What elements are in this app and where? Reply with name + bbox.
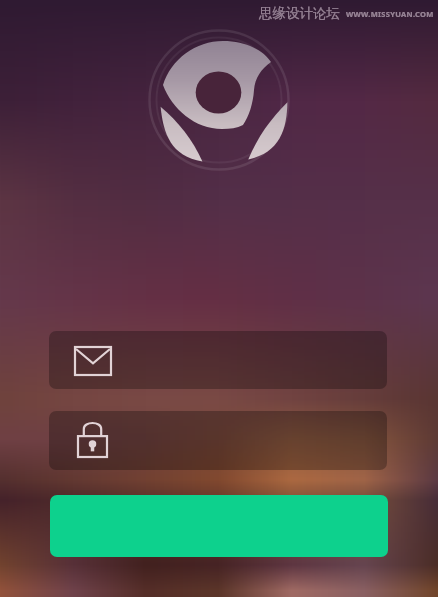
button[interactable]: Sign in (50, 495, 388, 557)
staticText: WWW.MISSYUAN.COM (346, 9, 434, 19)
staticText: 思缘设计论坛 (259, 5, 340, 22)
button[interactable]: Password (49, 411, 387, 470)
button[interactable]: Email (49, 331, 387, 389)
